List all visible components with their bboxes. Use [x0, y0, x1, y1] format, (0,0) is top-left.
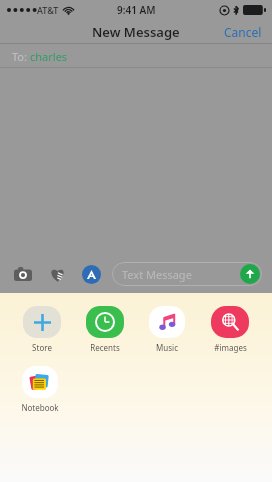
button[interactable]: Music	[138, 303, 196, 355]
staticText: AT&T	[37, 4, 59, 16]
button[interactable]: Notebook	[11, 363, 69, 415]
button[interactable]: Camera	[10, 261, 36, 287]
staticText: Cancel	[224, 24, 262, 40]
button[interactable]: App Store	[78, 261, 104, 287]
staticText: Music	[156, 342, 178, 353]
staticText: To:	[12, 49, 30, 64]
button[interactable]: Cancel	[214, 20, 272, 44]
staticText: #images	[214, 342, 247, 353]
staticText: Recents	[90, 342, 120, 353]
staticText: Notebook	[21, 402, 59, 413]
button[interactable]: Digital Touch	[44, 261, 70, 287]
staticText: charles	[30, 49, 68, 64]
button[interactable]: #images	[201, 303, 259, 355]
staticText: 9:41 AM	[117, 3, 156, 17]
button[interactable]: Recents	[76, 303, 134, 355]
button[interactable]: Send	[240, 264, 260, 284]
staticText: New Message	[92, 23, 180, 41]
button[interactable]: Text Message	[112, 262, 262, 286]
staticText: Text Message	[122, 267, 192, 282]
button[interactable]: To:	[0, 44, 272, 68]
staticText: Store	[32, 342, 52, 353]
button[interactable]: Store	[13, 303, 71, 355]
